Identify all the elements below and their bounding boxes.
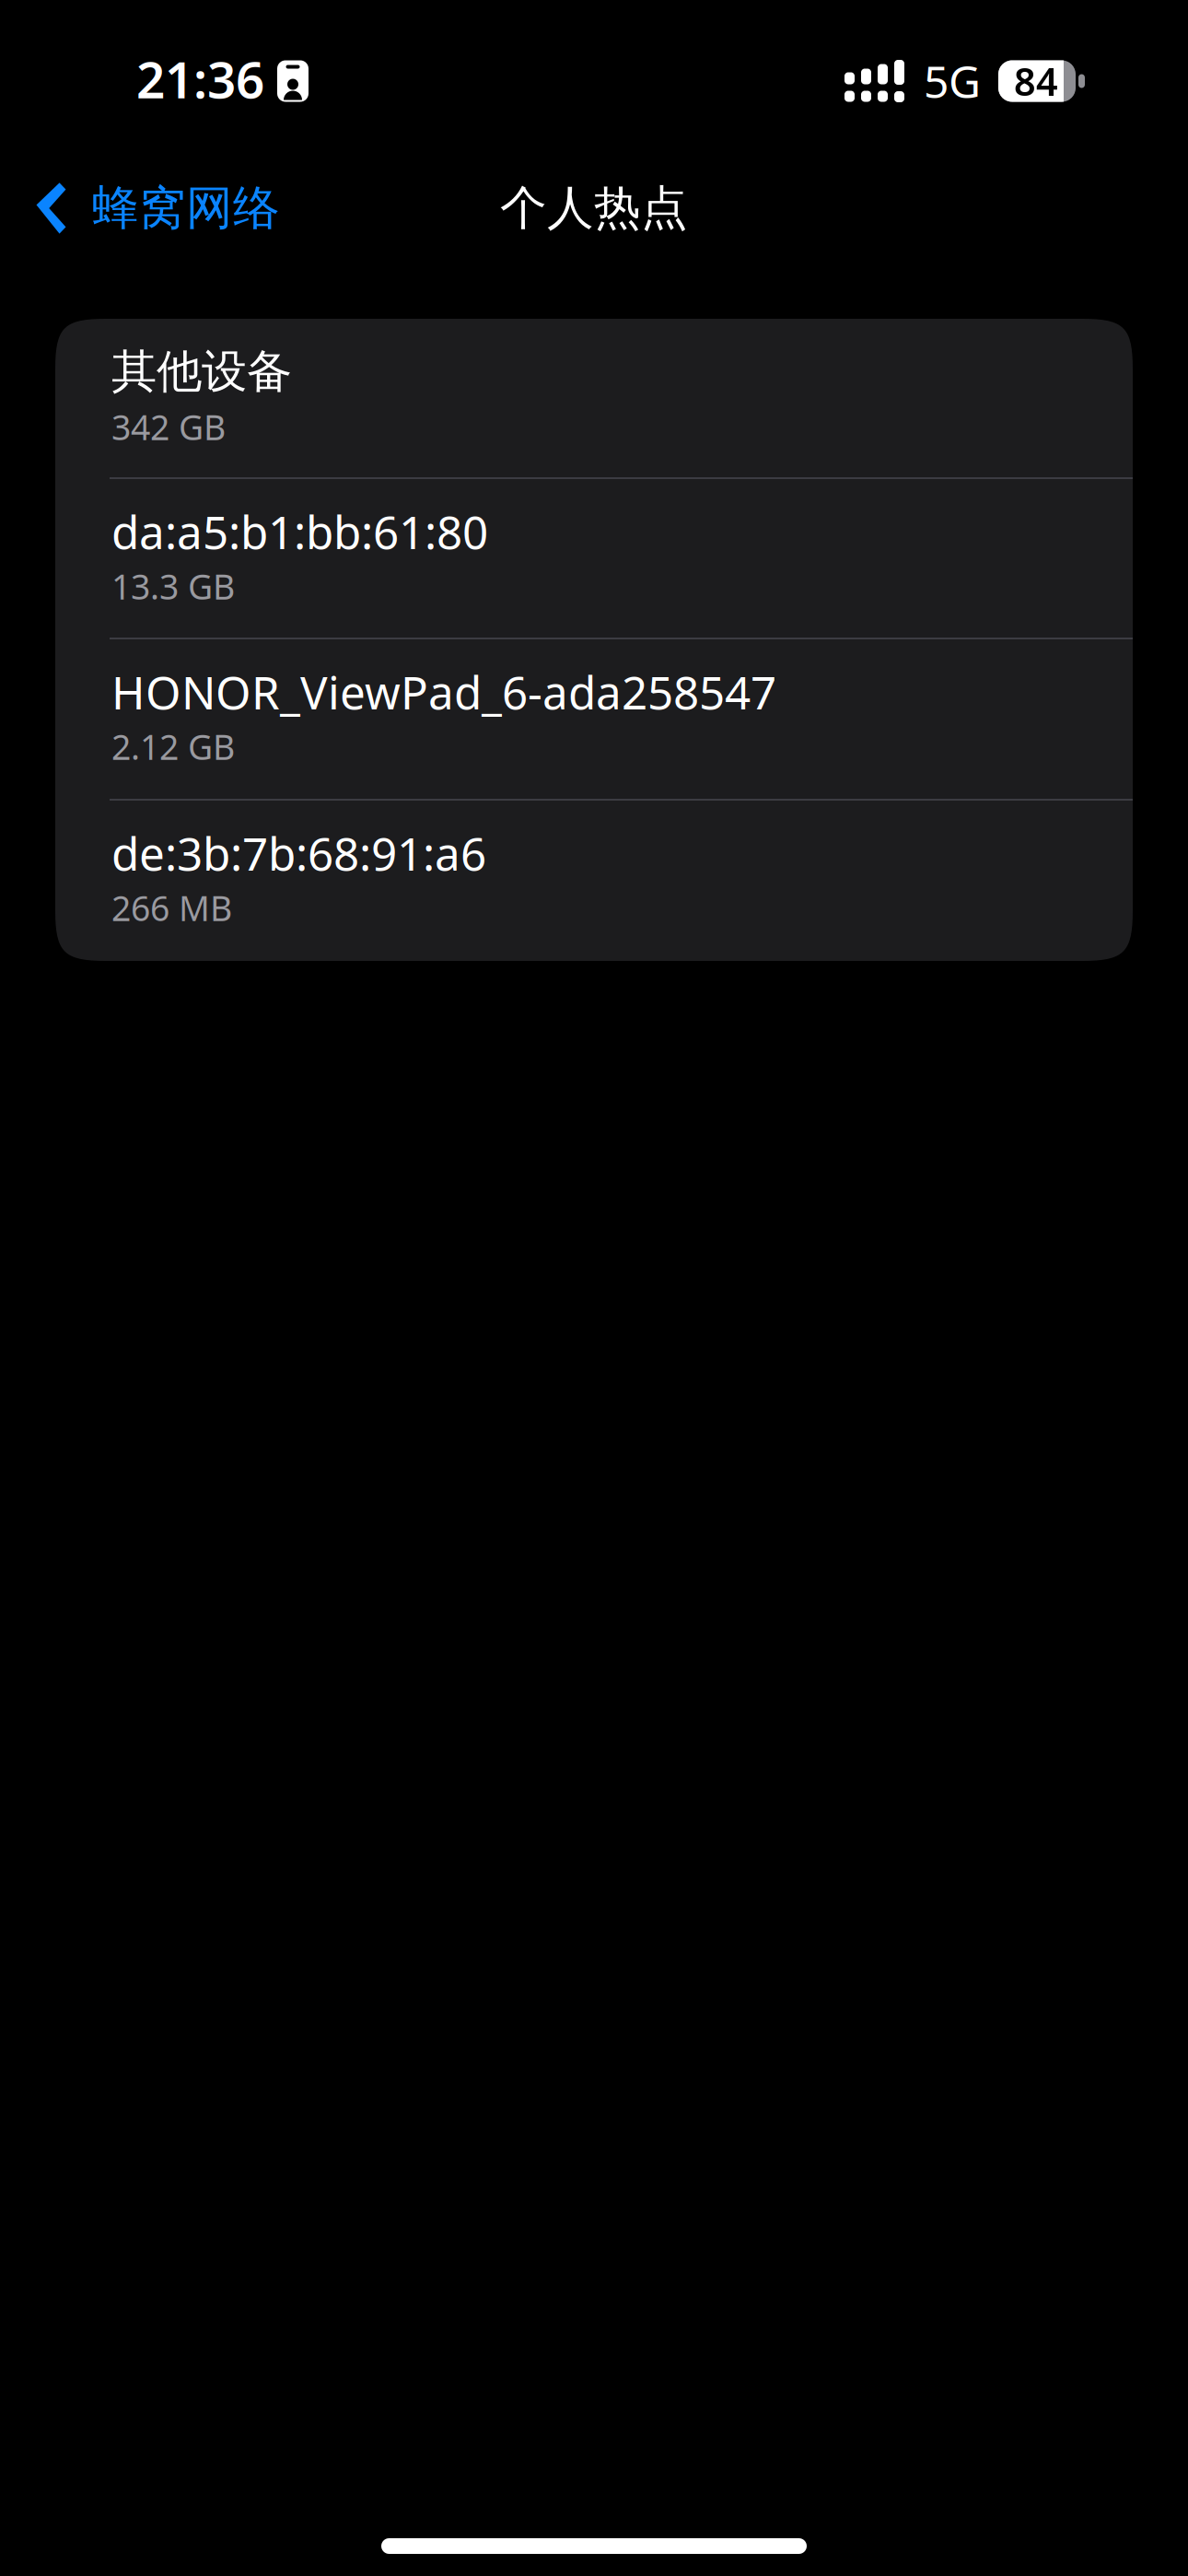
button[interactable]: 返回 蜂窝网络: [0, 161, 302, 255]
staticText: 蜂窝网络: [92, 180, 280, 237]
staticText: 342 GB: [111, 404, 226, 450]
staticText: 5G: [924, 52, 981, 110]
staticText: 266 MB: [111, 885, 232, 931]
staticText: 84: [1014, 56, 1058, 106]
button[interactable]: 其他设备: [55, 319, 1133, 477]
staticText: 21:36: [136, 45, 264, 112]
staticText: da:a5:b1:bb:61:80: [111, 501, 488, 562]
staticText: 个人热点: [500, 180, 688, 237]
staticText: 2.12 GB: [111, 724, 235, 769]
staticText: de:3b:7b:68:91:a6: [111, 823, 486, 883]
staticText: 13.3 GB: [111, 563, 235, 609]
button[interactable]: HONOR_ViewPad_6-ada258547: [55, 639, 1133, 799]
staticText: 其他设备: [111, 344, 292, 399]
button[interactable]: de:3b:7b:68:91:a6: [55, 801, 1133, 961]
staticText: HONOR_ViewPad_6-ada258547: [111, 662, 776, 722]
button[interactable]: da:a5:b1:bb:61:80: [55, 479, 1133, 638]
